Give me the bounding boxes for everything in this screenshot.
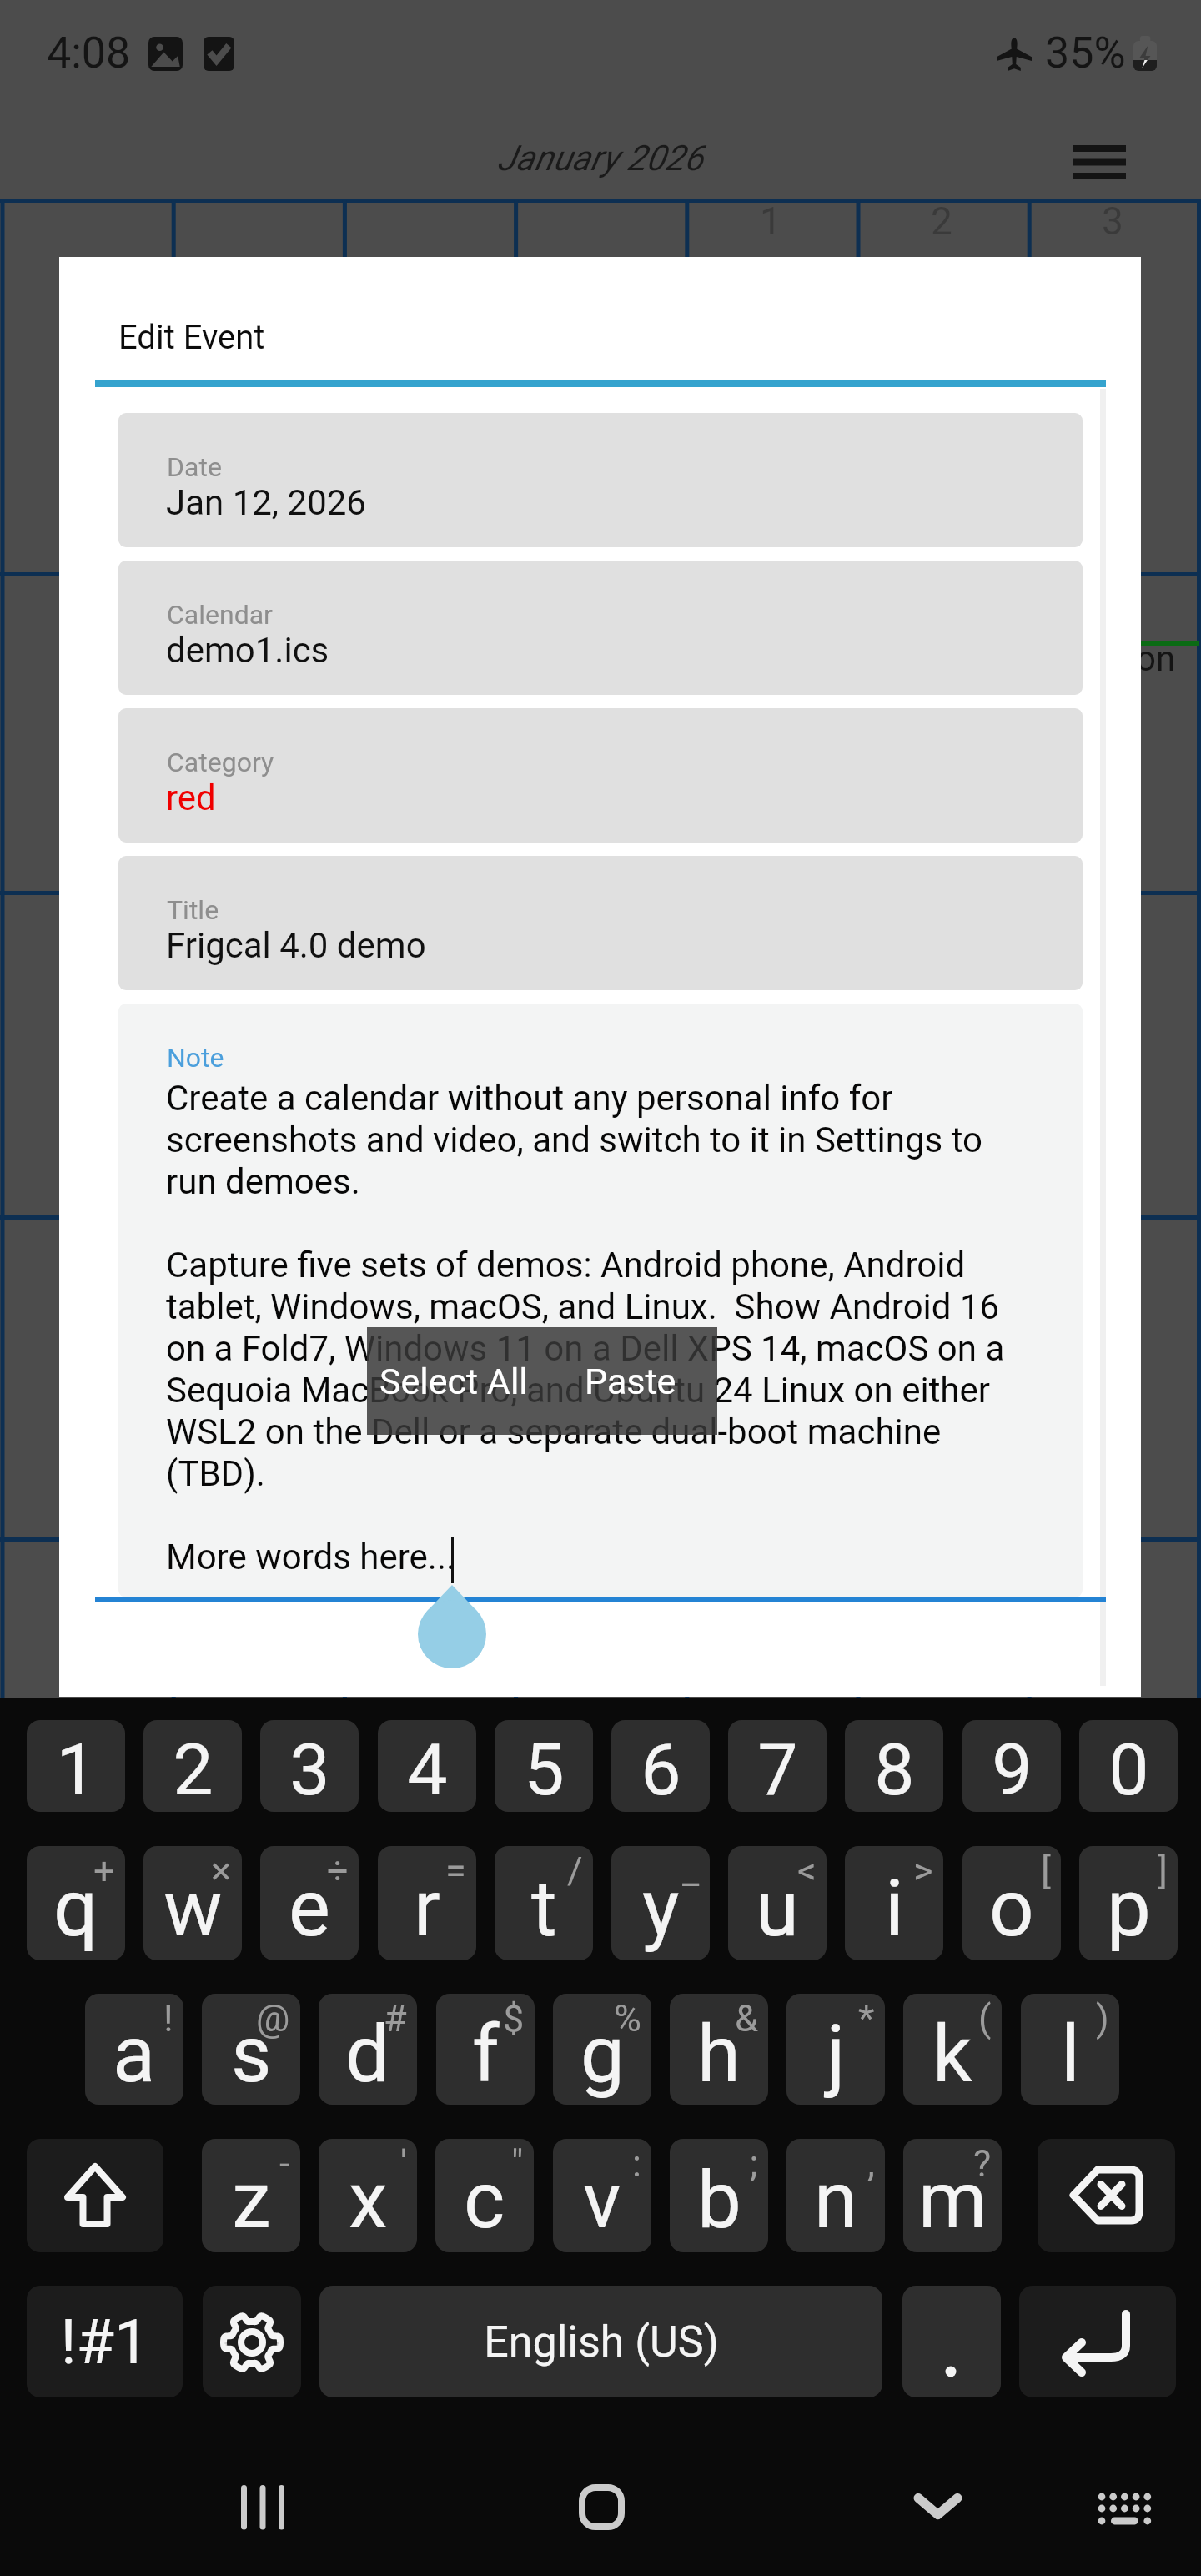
staticText: ÷ <box>327 1849 349 1893</box>
button[interactable]: Title <box>118 856 1083 990</box>
staticText: a <box>113 2009 156 2101</box>
button[interactable]: ( <box>903 1994 1002 2105</box>
staticText: l <box>1061 2009 1080 2101</box>
button[interactable]: % <box>553 1994 651 2105</box>
button[interactable]: × <box>143 1846 242 1960</box>
button[interactable]: Period <box>902 2286 1001 2397</box>
button[interactable]: ' <box>319 2139 417 2252</box>
button[interactable]: * <box>786 1994 885 2105</box>
staticText: y <box>642 1863 680 1955</box>
staticText: English (US) <box>484 2317 719 2367</box>
button[interactable]: : <box>553 2139 651 2252</box>
staticText: 4 <box>407 1728 448 1812</box>
button[interactable]: 9 <box>962 1720 1061 1812</box>
button[interactable]: 1 <box>27 1720 125 1812</box>
button[interactable]: @ <box>202 1994 300 2105</box>
staticText: demo1.ics <box>166 630 329 671</box>
staticText: ? <box>973 2141 992 2186</box>
button[interactable]: ] <box>1079 1846 1178 1960</box>
button[interactable]: Home <box>529 2454 672 2524</box>
staticText: x <box>349 2155 388 2246</box>
staticText: Edit Event <box>118 318 265 357</box>
staticText: !#1 <box>60 2306 149 2378</box>
staticText: ! <box>163 1996 173 2040</box>
staticText: Frigcal 4.0 demo <box>166 925 426 966</box>
button[interactable]: 3 <box>260 1720 359 1812</box>
button[interactable]: 2 <box>143 1720 242 1812</box>
button[interactable]: $ <box>436 1994 535 2105</box>
staticText: Paste <box>585 1361 676 1402</box>
staticText: e <box>289 1863 330 1955</box>
button[interactable]: _ <box>611 1846 710 1960</box>
button[interactable]: Keyboard settings <box>203 2286 301 2397</box>
staticText: 2 <box>173 1728 214 1812</box>
staticText: 4:08 <box>47 28 131 78</box>
button[interactable]: 8 <box>845 1720 943 1812</box>
staticText: Select All <box>379 1361 528 1402</box>
button[interactable]: Hide keyboard <box>862 2454 1013 2524</box>
button[interactable]: & <box>670 1994 768 2105</box>
staticText: c <box>464 2155 505 2246</box>
staticText: 8 <box>874 1728 915 1812</box>
staticText: b <box>697 2155 741 2246</box>
staticText: 0 <box>1108 1728 1149 1812</box>
staticText: d <box>345 2009 390 2101</box>
button[interactable]: Date <box>118 413 1083 547</box>
button[interactable]: Shift <box>27 2139 163 2252</box>
button[interactable]: ! <box>85 1994 183 2105</box>
staticText: January 2026 <box>497 138 704 179</box>
staticText: + <box>93 1849 115 1893</box>
staticText: = <box>445 1849 466 1893</box>
button[interactable]: # <box>319 1994 417 2105</box>
button[interactable]: ; <box>670 2139 768 2252</box>
button[interactable]: , <box>786 2139 885 2252</box>
button[interactable]: > <box>845 1846 943 1960</box>
staticText: w <box>163 1863 223 1955</box>
staticText: on <box>1136 638 1176 679</box>
button[interactable]: 0 <box>1079 1720 1178 1812</box>
button[interactable]: ) <box>1021 1994 1119 2105</box>
staticText: @ <box>256 1996 290 2040</box>
button[interactable]: ? <box>903 2139 1002 2252</box>
staticText: 3 <box>289 1728 330 1812</box>
button[interactable]: English (US) <box>319 2286 882 2397</box>
button[interactable]: Backspace <box>1038 2139 1175 2252</box>
button[interactable]: 6 <box>611 1720 710 1812</box>
button[interactable]: [ <box>962 1846 1061 1960</box>
button[interactable]: 5 <box>495 1720 593 1812</box>
button[interactable]: + <box>27 1846 125 1960</box>
staticText: h <box>697 2009 741 2101</box>
staticText: j <box>827 2009 846 2101</box>
button[interactable]: Recent apps <box>190 2402 340 2576</box>
button[interactable]: Enter <box>1019 2286 1176 2397</box>
button[interactable]: !#1 <box>27 2286 183 2397</box>
staticText: f <box>472 2009 500 2101</box>
button[interactable]: = <box>378 1846 476 1960</box>
button[interactable]: Note <box>118 1004 1083 1597</box>
staticText: ' <box>400 2141 407 2186</box>
staticText: [ <box>1041 1849 1051 1893</box>
staticText: s <box>231 2009 272 2101</box>
staticText: u <box>756 1863 799 1955</box>
button[interactable]: Calendar <box>118 561 1083 695</box>
button[interactable]: Select All <box>370 1327 537 1435</box>
staticText: Title <box>167 894 219 926</box>
button[interactable]: 7 <box>728 1720 827 1812</box>
staticText: t <box>531 1863 557 1955</box>
button[interactable]: Switch keyboard <box>1061 2454 1194 2524</box>
button[interactable]: " <box>435 2139 534 2252</box>
button[interactable]: Paste <box>557 1327 703 1435</box>
staticText: 9 <box>992 1728 1033 1812</box>
staticText: / <box>567 1849 583 1893</box>
button[interactable]: Category <box>118 708 1083 843</box>
staticText: Create a calendar without any personal i… <box>166 1078 1027 1577</box>
staticText: ( <box>978 1996 992 2040</box>
button[interactable]: - <box>202 2139 300 2252</box>
button[interactable]: Menu <box>1044 115 1155 209</box>
staticText: r <box>414 1863 440 1955</box>
staticText: * <box>858 1996 875 2040</box>
button[interactable]: / <box>495 1846 593 1960</box>
button[interactable]: 4 <box>378 1720 476 1812</box>
button[interactable]: ÷ <box>260 1846 359 1960</box>
button[interactable]: < <box>728 1846 827 1960</box>
